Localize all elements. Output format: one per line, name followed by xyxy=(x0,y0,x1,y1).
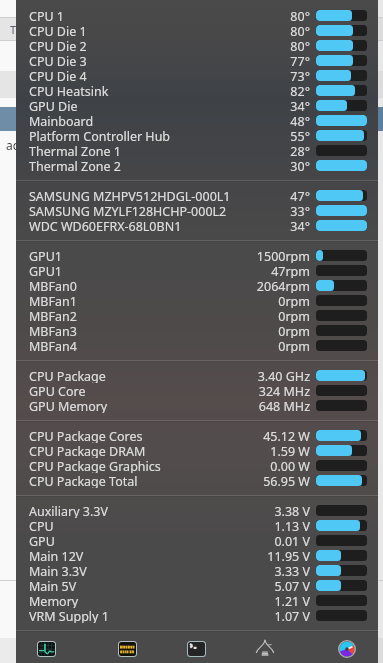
staticText: CPU xyxy=(29,518,54,533)
button[interactable]: Terminal xyxy=(188,642,205,656)
button[interactable]: iStat Menus xyxy=(338,640,356,658)
staticText: MBFan4 xyxy=(29,338,77,353)
button[interactable]: Activity Monitor xyxy=(38,642,55,656)
staticText: 11.95 V xyxy=(267,548,310,563)
staticText: SAMSUNG MZYLF128HCHP-000L2 xyxy=(29,203,227,218)
staticText: VRM Supply 1 xyxy=(29,608,109,623)
button[interactable]: CPU Package Total xyxy=(16,473,378,488)
button[interactable]: CPU Die 3 xyxy=(16,53,378,68)
button[interactable]: SAMSUNG MZYLF128HCHP-000L2 xyxy=(16,203,378,218)
staticText: MBFan1 xyxy=(29,293,77,308)
button[interactable]: Warned At xyxy=(119,642,136,656)
button[interactable]: Auxiliary 3.3V xyxy=(16,503,378,518)
staticText: 77° xyxy=(290,53,310,68)
staticText: T xyxy=(10,22,17,37)
button[interactable]: MBFan2 xyxy=(16,308,378,323)
staticText: Mainboard xyxy=(29,113,94,128)
button[interactable]: Main 12V xyxy=(16,548,378,563)
button[interactable]: Platform Controller Hub xyxy=(16,128,378,143)
staticText: 30° xyxy=(290,158,310,173)
staticText: CPU Die 2 xyxy=(29,38,87,53)
staticText: GPU xyxy=(29,533,55,548)
staticText: 28° xyxy=(290,143,310,158)
staticText: CPU Package Cores xyxy=(29,428,143,443)
staticText: CPU Package Total xyxy=(29,473,138,488)
staticText: 3.33 V xyxy=(274,563,310,578)
button[interactable]: GPU1 xyxy=(16,263,378,278)
staticText: GPU1 xyxy=(29,248,62,263)
staticText: 1.07 V xyxy=(274,608,310,623)
staticText: 34° xyxy=(290,218,310,233)
staticText: 48° xyxy=(290,113,310,128)
staticText: Main 5V xyxy=(29,578,77,593)
staticText: CPU 1 xyxy=(29,8,65,23)
button[interactable]: GPU xyxy=(16,533,378,548)
staticText: Thermal Zone 1 xyxy=(29,143,121,158)
button[interactable]: Main 3.3V xyxy=(16,563,378,578)
staticText: CPU Die 3 xyxy=(29,53,87,68)
staticText: 0rpm xyxy=(278,308,310,323)
staticText: MBFan3 xyxy=(29,323,77,338)
staticText: Main 3.3V xyxy=(29,563,87,578)
staticText: 47rpm xyxy=(271,263,310,278)
staticText: CPU Package Graphics xyxy=(29,458,161,473)
button[interactable]: Memory xyxy=(16,593,378,608)
staticText: Main 12V xyxy=(29,548,84,563)
button[interactable]: MBFan3 xyxy=(16,323,378,338)
button[interactable]: CPU Heatsink xyxy=(16,83,378,98)
staticText: 80° xyxy=(290,8,310,23)
button[interactable]: WDC WD60EFRX-68L0BN1 xyxy=(16,218,378,233)
staticText: CPU Package DRAM xyxy=(29,443,146,458)
staticText: 80° xyxy=(290,23,310,38)
staticText: 0.00 W xyxy=(270,458,310,473)
staticText: CPU Die 4 xyxy=(29,68,87,83)
staticText: Auxiliary 3.3V xyxy=(29,503,108,518)
button[interactable]: CPU Package DRAM xyxy=(16,443,378,458)
button[interactable]: CPU Package Cores xyxy=(16,428,378,443)
staticText: 1.13 V xyxy=(274,518,310,533)
staticText: GPU Die xyxy=(29,98,78,113)
button[interactable]: CPU Package Graphics xyxy=(16,458,378,473)
staticText: 648 MHz xyxy=(258,398,310,413)
staticText: 1.59 W xyxy=(270,443,310,458)
button[interactable]: GPU Die xyxy=(16,98,378,113)
staticText: 3.38 V xyxy=(274,503,310,518)
staticText: 1500rpm xyxy=(256,248,310,263)
button[interactable]: Thermal Zone 2 xyxy=(16,158,378,173)
staticText: CPU Package xyxy=(29,368,106,383)
button[interactable]: GPU1 xyxy=(16,248,378,263)
staticText: 0rpm xyxy=(278,323,310,338)
button[interactable]: CPU Die 4 xyxy=(16,68,378,83)
button[interactable]: CPU Package xyxy=(16,368,378,383)
staticText: 1.21 V xyxy=(274,593,310,608)
staticText: MBFan0 xyxy=(29,278,77,293)
button[interactable]: SAMSUNG MZHPV512HDGL-000L1 xyxy=(16,188,378,203)
button[interactable]: GPU Memory xyxy=(16,398,378,413)
staticText: 0.01 V xyxy=(274,533,310,548)
button[interactable]: CPU xyxy=(16,518,378,533)
button[interactable]: CPU Die 2 xyxy=(16,38,378,53)
staticText: Thermal Zone 2 xyxy=(29,158,121,173)
button[interactable]: Thermal Zone 1 xyxy=(16,143,378,158)
button[interactable]: MBFan0 xyxy=(16,278,378,293)
staticText: 73° xyxy=(290,68,310,83)
staticText: 324 MHz xyxy=(258,383,310,398)
staticText: 2064rpm xyxy=(256,278,310,293)
staticText: 0rpm xyxy=(278,293,310,308)
staticText: 47° xyxy=(290,188,310,203)
button[interactable]: GPU Core xyxy=(16,383,378,398)
button[interactable]: Mainboard xyxy=(16,113,378,128)
button[interactable]: CPU Die 1 xyxy=(16,23,378,38)
staticText: 55° xyxy=(290,128,310,143)
button[interactable]: Xcode xyxy=(255,637,275,657)
button[interactable]: MBFan4 xyxy=(16,338,378,353)
staticText: WDC WD60EFRX-68L0BN1 xyxy=(29,218,182,233)
button[interactable]: VRM Supply 1 xyxy=(16,608,378,623)
button[interactable]: Main 5V xyxy=(16,578,378,593)
staticText: GPU Memory xyxy=(29,398,108,413)
staticText: GPU Core xyxy=(29,383,86,398)
button[interactable]: MBFan1 xyxy=(16,293,378,308)
button[interactable]: CPU 1 xyxy=(16,8,378,23)
staticText: ac xyxy=(6,137,19,153)
staticText: 33° xyxy=(290,203,310,218)
